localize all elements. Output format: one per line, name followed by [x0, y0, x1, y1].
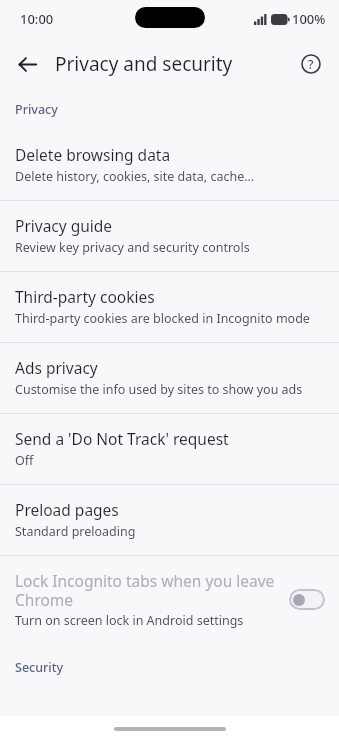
staticText: Delete history, cookies, site data, cach…: [15, 168, 255, 185]
staticText: Review key privacy and security controls: [15, 239, 250, 256]
staticText: Privacy and security: [55, 51, 233, 77]
button[interactable]: Help: [291, 44, 331, 84]
staticText: Send a 'Do Not Track' request: [15, 428, 229, 449]
staticText: Delete browsing data: [15, 144, 171, 165]
button[interactable]: Lock Incognito tabs toggle: [289, 589, 325, 610]
staticText: 10:00: [20, 10, 54, 28]
button[interactable]: Delete browsing data: [0, 130, 339, 200]
staticText: Third-party cookies: [15, 286, 155, 307]
button[interactable]: Preload pages: [0, 485, 339, 555]
staticText: Third-party cookies are blocked in Incog…: [15, 310, 310, 327]
staticText: Turn on screen lock in Android settings: [15, 612, 244, 629]
staticText: Preload pages: [15, 499, 119, 520]
staticText: 100%: [292, 10, 326, 28]
staticText: Standard preloading: [15, 523, 136, 540]
button[interactable]: Send a 'Do Not Track' request: [0, 414, 339, 484]
staticText: ?: [308, 56, 314, 72]
staticText: Privacy: [15, 101, 58, 118]
staticText: Off: [15, 452, 34, 469]
staticText: Lock Incognito tabs when you leave Chrom…: [15, 570, 279, 610]
button[interactable]: Third-party cookies: [0, 272, 339, 342]
staticText: Security: [15, 659, 64, 676]
button[interactable]: Lock Incognito tabs when you leave Chrom…: [0, 556, 339, 643]
staticText: Privacy guide: [15, 215, 113, 236]
staticText: Ads privacy: [15, 357, 98, 378]
button[interactable]: Privacy guide: [0, 201, 339, 271]
button[interactable]: Ads privacy: [0, 343, 339, 413]
staticText: Customise the info used by sites to show…: [15, 381, 303, 398]
button[interactable]: Back: [7, 44, 47, 84]
